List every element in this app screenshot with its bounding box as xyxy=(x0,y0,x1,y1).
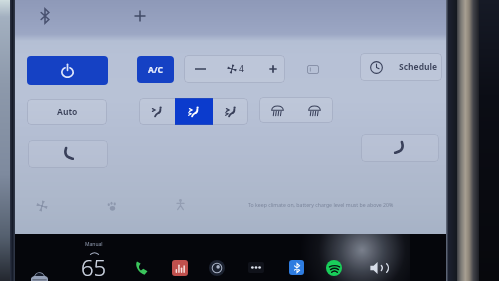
button[interactable]: Spotify xyxy=(326,260,342,276)
button[interactable]: Camera xyxy=(209,260,225,276)
button[interactable]: Fan options xyxy=(36,200,48,212)
button[interactable]: Bluetooth xyxy=(39,8,51,24)
button[interactable]: Decrease fan speed xyxy=(184,55,217,83)
button[interactable]: Airflow face xyxy=(139,98,175,125)
button[interactable]: Car controls xyxy=(31,270,48,281)
button[interactable]: Bluetooth xyxy=(289,260,304,275)
button[interactable]: Phone xyxy=(134,260,149,276)
staticText: Manual xyxy=(85,241,103,248)
button[interactable]: A/C xyxy=(137,56,174,83)
button[interactable]: Front defrost xyxy=(259,97,296,123)
button[interactable]: Camp mode xyxy=(175,199,186,210)
button[interactable]: Driver seat heater xyxy=(28,140,108,168)
button[interactable]: Volume xyxy=(370,261,388,275)
button[interactable]: Manual xyxy=(72,241,116,281)
staticText: A/C xyxy=(148,64,163,76)
button[interactable]: More apps xyxy=(248,262,264,273)
button[interactable]: Auto xyxy=(27,99,107,125)
button[interactable]: Media player xyxy=(172,260,188,276)
staticText: 65 xyxy=(81,252,107,281)
button[interactable]: Recirculate air xyxy=(299,55,327,83)
button[interactable]: Dog mode xyxy=(107,201,118,212)
staticText: To keep climate on, battery charge level… xyxy=(248,201,394,208)
staticText: 4 xyxy=(239,63,244,75)
staticText: Schedule xyxy=(399,61,438,73)
button[interactable]: Climate power xyxy=(27,56,108,85)
button[interactable]: Passenger seat heater xyxy=(361,134,439,162)
button[interactable]: Fan speed 4 xyxy=(217,55,253,83)
button[interactable]: Airflow face and feet xyxy=(175,98,213,125)
button[interactable]: Schedule xyxy=(360,53,442,81)
staticText: Auto xyxy=(57,106,78,118)
button[interactable]: Rear defrost xyxy=(296,97,333,123)
button[interactable]: Add xyxy=(134,10,146,22)
button[interactable]: Increase fan speed xyxy=(253,55,285,83)
button[interactable]: Airflow feet xyxy=(213,98,248,125)
